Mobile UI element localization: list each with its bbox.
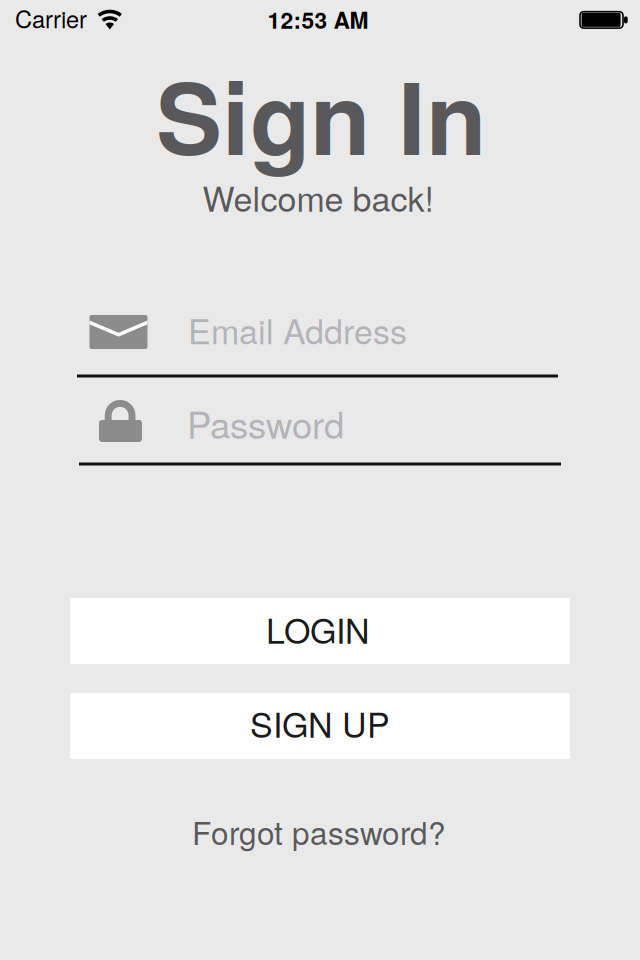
staticText: Sign In xyxy=(156,44,486,185)
staticText: Forgot password? xyxy=(192,809,446,854)
staticText: SIGN UP xyxy=(250,699,390,747)
button[interactable]: Password field xyxy=(77,380,558,466)
button[interactable]: Forgot password? xyxy=(192,809,446,854)
staticText: Password xyxy=(187,397,344,449)
staticText: Email Address xyxy=(188,305,407,354)
staticText: LOGIN xyxy=(266,605,370,653)
button[interactable]: SIGN UP xyxy=(70,693,570,759)
staticText: Welcome back! xyxy=(202,173,433,221)
button[interactable]: Email Address field xyxy=(77,286,558,372)
button[interactable]: LOGIN xyxy=(70,598,570,664)
staticText: 12:53 AM xyxy=(267,3,368,36)
staticText: Carrier xyxy=(15,1,87,35)
